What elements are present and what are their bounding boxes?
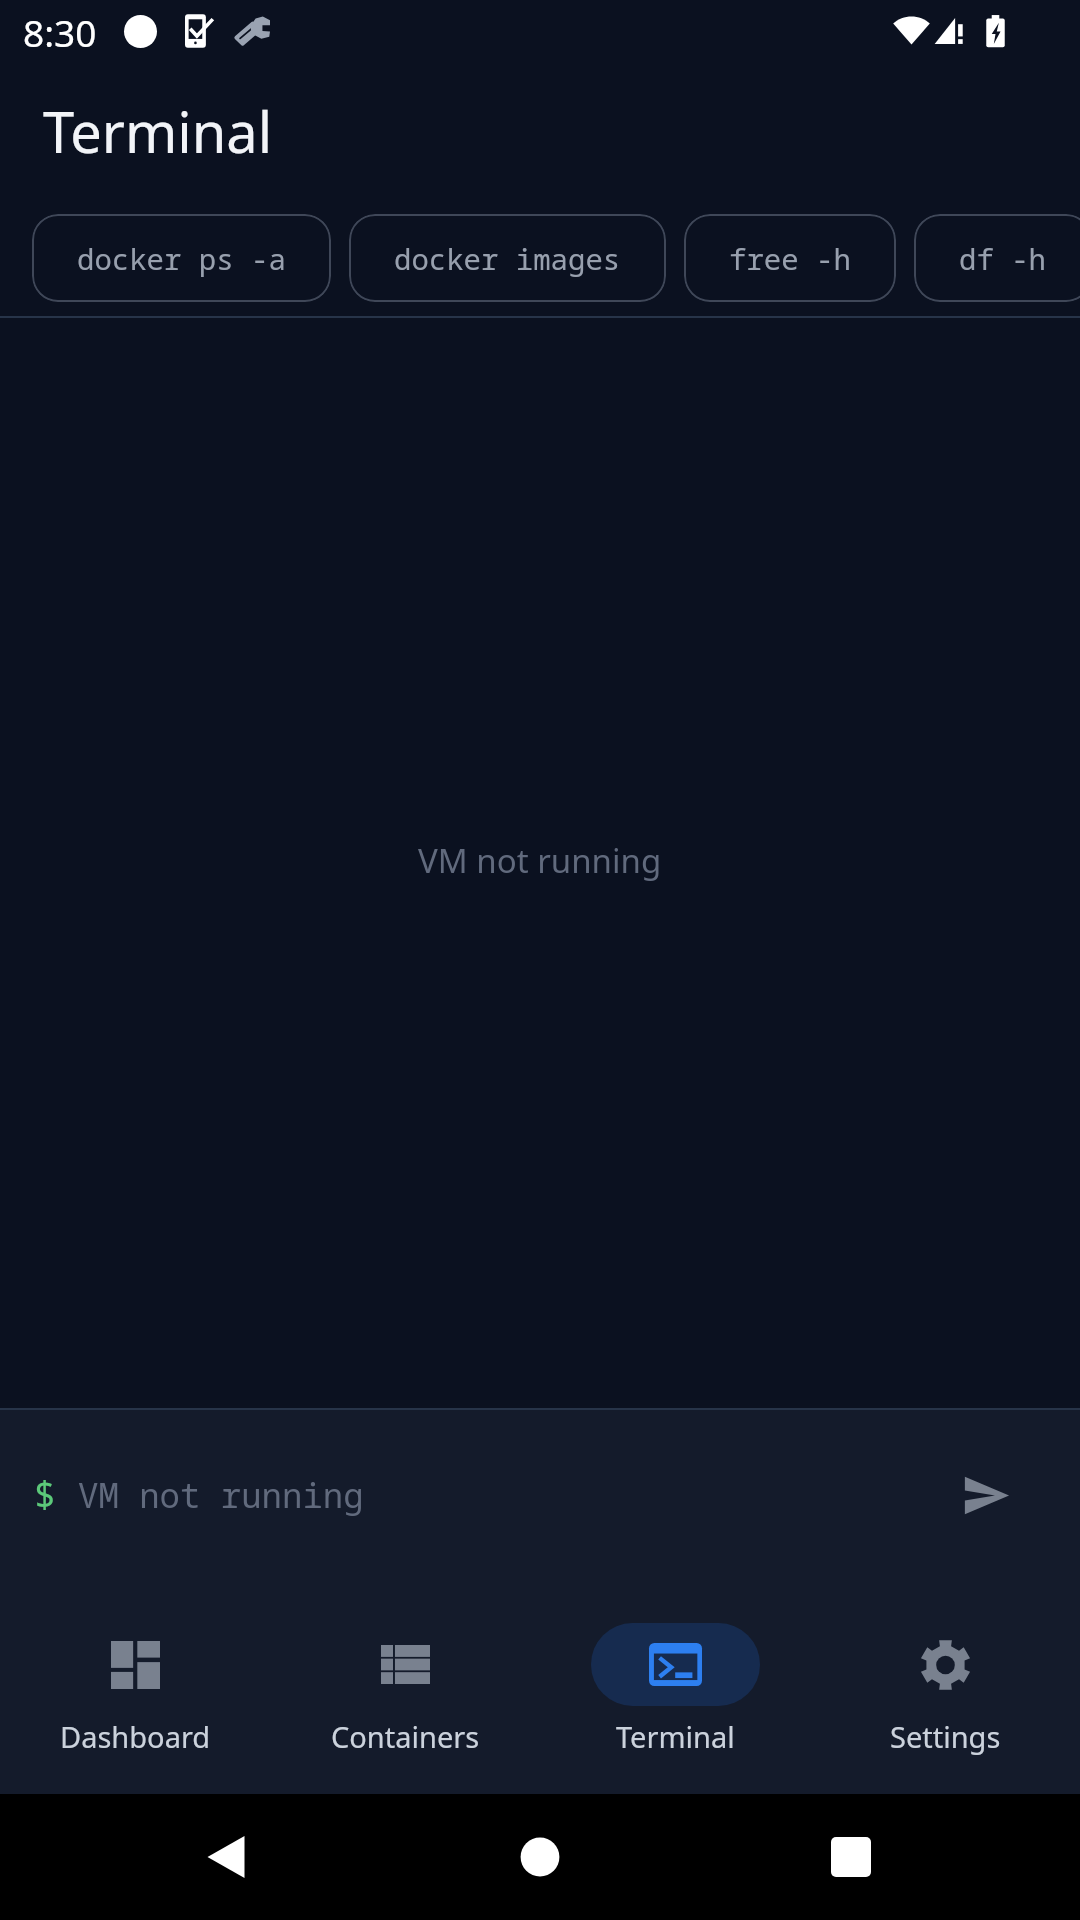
staticText: VM not running — [418, 838, 662, 883]
button[interactable]: Send command — [946, 1455, 1026, 1535]
button[interactable]: Home — [510, 1827, 570, 1887]
button[interactable]: docker images — [349, 214, 666, 302]
button[interactable]: Back — [196, 1827, 256, 1887]
staticText: docker ps -a — [77, 239, 286, 278]
staticText: Terminal — [43, 93, 273, 169]
button[interactable]: Settings — [810, 1594, 1080, 1794]
staticText: VM not running — [78, 1472, 364, 1518]
button[interactable]: Terminal — [540, 1594, 810, 1794]
staticText: free -h — [729, 239, 851, 278]
staticText: 8:30 — [23, 7, 97, 57]
button[interactable]: docker ps -a — [32, 214, 331, 302]
button[interactable]: free -h — [684, 214, 896, 302]
staticText: Dashboard — [60, 1717, 211, 1756]
button[interactable]: Recent apps — [821, 1827, 881, 1887]
button[interactable]: VM not running — [78, 1410, 946, 1594]
staticText: docker images — [394, 239, 621, 278]
staticText: Terminal — [616, 1717, 735, 1756]
staticText: $ — [34, 1470, 56, 1519]
button[interactable]: Dashboard — [0, 1594, 270, 1794]
staticText: Settings — [890, 1717, 1001, 1756]
staticText: df -h — [959, 239, 1047, 278]
staticText: Containers — [331, 1717, 480, 1756]
button[interactable]: Containers — [270, 1594, 540, 1794]
button[interactable]: df -h — [914, 214, 1080, 302]
